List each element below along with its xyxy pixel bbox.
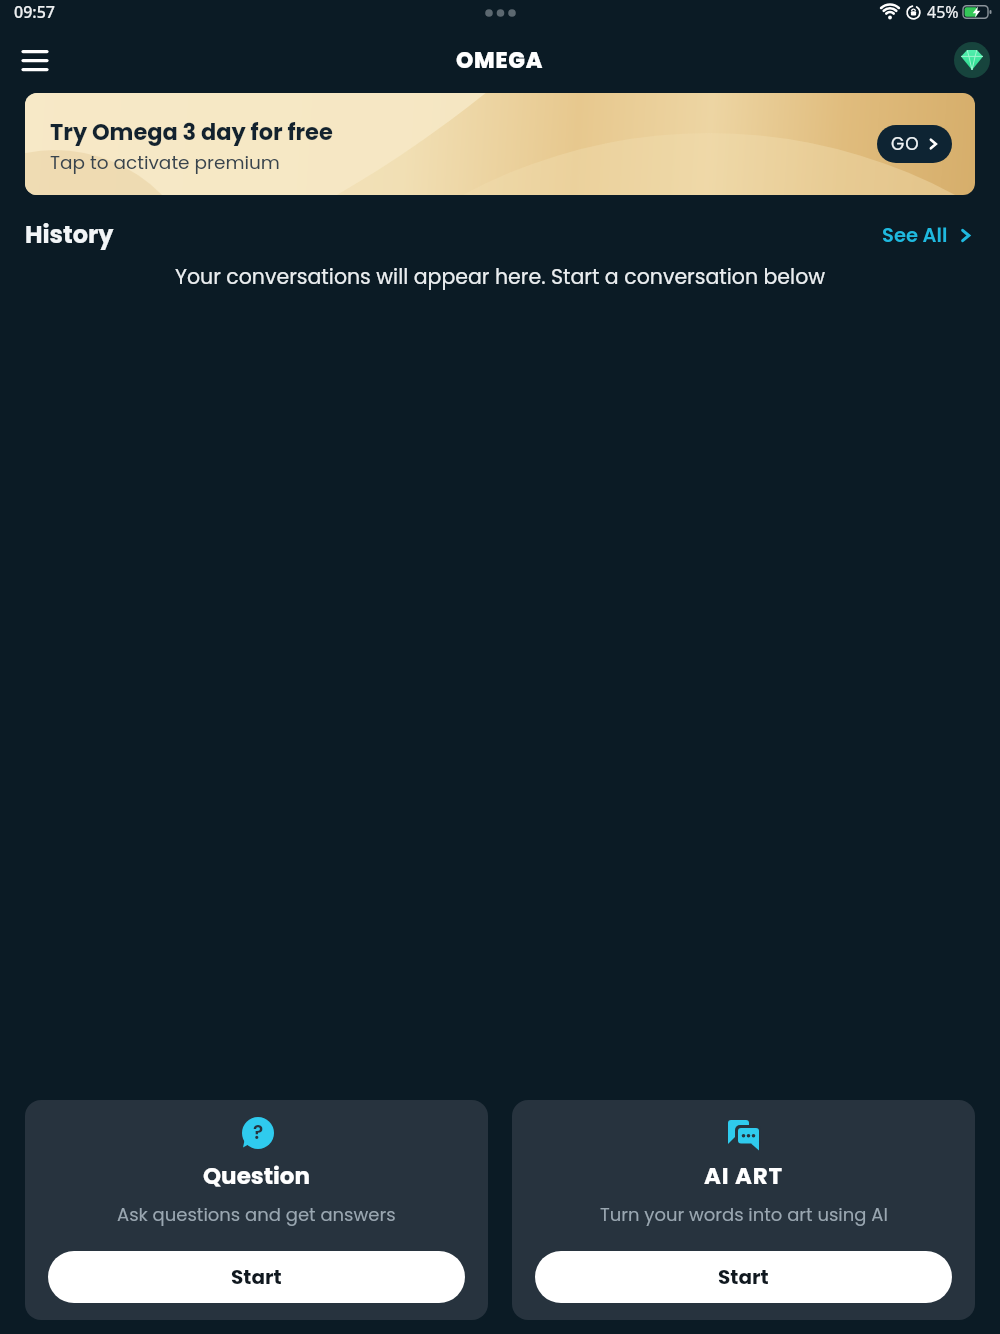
staticText: History [25, 218, 114, 252]
staticText: OMEGA [456, 45, 544, 76]
staticText: See All [882, 222, 948, 249]
staticText: ? [253, 1119, 264, 1146]
button[interactable]: AI ART [512, 1100, 975, 1320]
staticText: Question [203, 1160, 310, 1192]
staticText: 45% [927, 1, 959, 23]
staticText: GO [891, 132, 920, 156]
staticText: AI ART [704, 1160, 783, 1192]
staticText: Ask questions and get answers [117, 1202, 396, 1227]
button[interactable]: See All [882, 222, 972, 249]
staticText: 09:57 [14, 1, 55, 23]
staticText: Try Omega 3 day for free [50, 116, 333, 147]
staticText: Tap to activate premium [50, 150, 280, 176]
button[interactable]: GO [877, 125, 952, 163]
staticText: Start [718, 1263, 769, 1291]
button[interactable] [954, 42, 990, 78]
staticText: Your conversations will appear here. Sta… [0, 262, 1000, 291]
button[interactable]: ? [25, 1100, 488, 1320]
button[interactable]: Start [535, 1251, 952, 1303]
button[interactable]: Start [48, 1251, 465, 1303]
staticText: Start [231, 1263, 282, 1291]
button[interactable] [13, 38, 57, 82]
staticText: Turn your words into art using AI [600, 1202, 888, 1227]
button[interactable]: Try Omega 3 day for free [25, 93, 975, 195]
